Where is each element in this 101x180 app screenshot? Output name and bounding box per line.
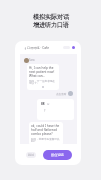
staticText: ok, could I have the half and flatbread … [31,124,61,136]
staticText: 点击查看 [56,92,67,95]
button[interactable]: 按住说话 [43,150,72,160]
button[interactable]: ok, could I have the half and flatbread … [31,124,61,143]
button[interactable]: Menu [72,46,75,49]
button[interactable]: Hi, I can help the next patient now! Wha… [29,66,57,88]
button[interactable]: Back [23,46,27,50]
button[interactable]: 88 [37,99,74,120]
staticText: 口语陪练 · Cafe [27,46,49,50]
staticText: 你好，下一位患者现在可以了。 [29,79,57,85]
staticText: 88 [41,102,45,106]
button[interactable]: 跳过 [28,153,34,157]
staticText: 增进听力口语 [33,21,69,29]
staticText: 按住说话 [51,153,64,157]
staticText: 模拟实际对话 [33,13,69,21]
staticText: 分 [47,102,50,105]
staticText: 好的，我要半份套餐可以吗？ [31,137,61,143]
staticText: ? [44,109,46,113]
staticText: Sara [29,58,35,62]
staticText: Hi, I can help the next patient now! Wha… [29,66,57,78]
staticText: 跳过 [28,153,34,157]
